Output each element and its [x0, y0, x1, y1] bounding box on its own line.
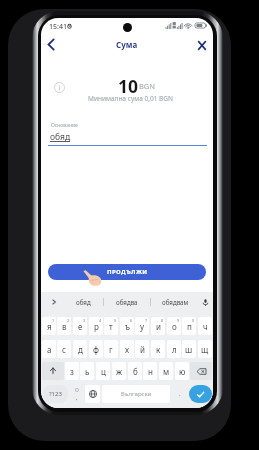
staticText: Сума: [116, 39, 138, 50]
button[interactable]: и: [151, 317, 165, 335]
staticText: 9: [177, 318, 180, 323]
button[interactable]: а: [42, 340, 56, 358]
button[interactable]: ц: [96, 362, 110, 380]
button[interactable]: я: [42, 317, 56, 335]
button[interactable]: м: [159, 362, 173, 380]
button[interactable]: Backspace: [190, 362, 212, 380]
staticText: в: [62, 321, 67, 332]
staticText: г: [109, 344, 113, 355]
staticText: ,: [76, 394, 78, 401]
button[interactable]: обяд: [63, 292, 103, 312]
button[interactable]: щ: [198, 340, 212, 358]
staticText: 3: [83, 318, 86, 323]
button[interactable]: Shift: [42, 362, 64, 380]
button[interactable]: обядва: [104, 292, 150, 312]
button[interactable]: Info: [54, 82, 65, 93]
staticText: с: [62, 344, 66, 355]
staticText: к: [156, 344, 161, 355]
button[interactable]: ПРОДЪЛЖИ: [48, 264, 206, 280]
button[interactable]: х: [120, 340, 134, 358]
button[interactable]: т: [104, 317, 118, 335]
button[interactable]: о: [167, 317, 181, 335]
button[interactable]: Change language: [85, 385, 100, 403]
staticText: 1: [52, 318, 55, 323]
button[interactable]: ж: [112, 362, 126, 380]
button[interactable]: ъ: [120, 317, 134, 335]
staticText: .: [179, 390, 181, 398]
staticText: д: [78, 344, 83, 355]
button[interactable]: ч: [198, 317, 212, 335]
staticText: т: [109, 321, 113, 332]
button[interactable]: г: [104, 340, 118, 358]
button[interactable]: ш: [182, 340, 196, 358]
button[interactable]: Back: [42, 36, 59, 53]
staticText: ц: [101, 366, 106, 377]
button[interactable]: у: [135, 317, 149, 335]
staticText: н: [148, 366, 153, 377]
staticText: й: [140, 344, 145, 355]
staticText: и: [156, 321, 161, 332]
button[interactable]: с: [57, 340, 71, 358]
button[interactable]: ?123: [43, 385, 68, 403]
button[interactable]: п: [182, 317, 196, 335]
button[interactable]: е: [73, 317, 87, 335]
button[interactable]: л: [167, 340, 181, 358]
staticText: ч: [203, 321, 208, 332]
button[interactable]: й: [135, 340, 149, 358]
staticText: п: [187, 321, 192, 332]
staticText: м: [163, 366, 170, 377]
staticText: ПРОДЪЛЖИ: [107, 268, 148, 276]
staticText: о: [172, 321, 177, 332]
staticText: обяд: [50, 131, 71, 143]
staticText: 4: [99, 318, 102, 323]
staticText: ъ: [125, 321, 130, 332]
button[interactable]: к: [151, 340, 165, 358]
staticText: 0: [192, 318, 195, 323]
button[interactable]: н: [143, 362, 157, 380]
staticText: з: [70, 366, 74, 377]
staticText: е: [78, 321, 83, 332]
button[interactable]: б: [128, 362, 142, 380]
button[interactable]: Voice input: [198, 292, 213, 312]
staticText: 5: [114, 318, 117, 323]
button[interactable]: з: [65, 362, 79, 380]
staticText: 7: [145, 318, 148, 323]
staticText: Български: [121, 390, 152, 398]
staticText: ф: [93, 344, 99, 355]
staticText: ь: [85, 366, 90, 377]
button[interactable]: ф: [89, 340, 103, 358]
staticText: р: [94, 321, 99, 332]
staticText: ж: [116, 366, 123, 377]
staticText: 6: [130, 318, 133, 323]
button[interactable]: обядвам: [151, 292, 199, 312]
staticText: 10: [118, 74, 139, 98]
staticText: л: [172, 344, 177, 355]
staticText: щ: [201, 344, 209, 355]
button[interactable]: Period: [172, 385, 187, 403]
button[interactable]: Comma: [69, 385, 84, 403]
button[interactable]: р: [89, 317, 103, 335]
staticText: 15:41: [49, 22, 67, 32]
staticText: а: [47, 344, 52, 355]
staticText: ю: [179, 366, 186, 377]
staticText: обяд: [76, 298, 91, 306]
staticText: Минимална сума 0,01 BGN: [88, 94, 173, 103]
staticText: ?123: [49, 390, 62, 398]
staticText: обядвам: [162, 298, 189, 306]
button[interactable]: ь: [80, 362, 94, 380]
staticText: 2: [67, 318, 70, 323]
staticText: 8: [161, 318, 164, 323]
button[interactable]: Close: [193, 37, 210, 54]
staticText: ш: [185, 344, 193, 355]
button[interactable]: в: [57, 317, 71, 335]
button[interactable]: д: [73, 340, 87, 358]
staticText: б: [133, 366, 138, 377]
button[interactable]: More suggestions: [46, 292, 62, 312]
staticText: BGN: [139, 81, 156, 91]
staticText: у: [140, 321, 145, 332]
staticText: обядва: [116, 298, 138, 306]
staticText: Основание: [51, 122, 78, 129]
button[interactable]: Enter: [189, 385, 212, 403]
button[interactable]: ю: [175, 362, 189, 380]
button[interactable]: Български: [102, 385, 170, 403]
